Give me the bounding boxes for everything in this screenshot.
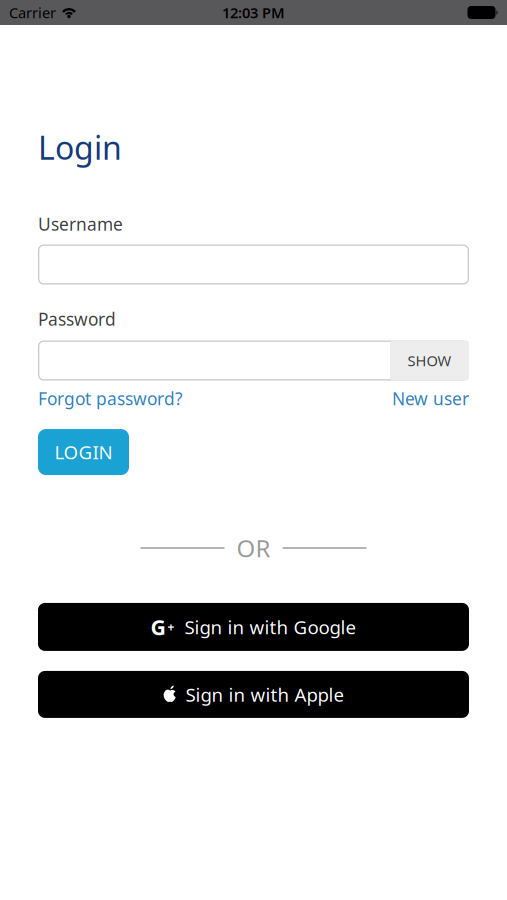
- button[interactable]: Password: [38, 340, 469, 380]
- button[interactable]: G: [38, 603, 469, 651]
- staticText: Sign in with Apple: [185, 682, 344, 707]
- staticText: G: [150, 613, 165, 641]
- button[interactable]: Forgot password?: [38, 387, 183, 410]
- button[interactable]: SHOW: [390, 340, 469, 380]
- staticText: +: [167, 619, 174, 635]
- staticText: Login: [38, 126, 122, 168]
- staticText: New user: [392, 387, 469, 410]
- staticText: Username: [38, 212, 123, 235]
- button[interactable]: New user: [392, 387, 469, 410]
- staticText: Password: [38, 307, 116, 330]
- staticText: Carrier: [9, 3, 56, 22]
- staticText: 12:03 PM: [222, 3, 285, 22]
- staticText: LOGIN: [54, 440, 112, 464]
- staticText: Sign in with Google: [184, 614, 356, 639]
- staticText: Forgot password?: [38, 387, 183, 410]
- staticText: OR: [236, 532, 270, 564]
- button[interactable]: Username: [38, 244, 469, 284]
- staticText: SHOW: [407, 351, 451, 370]
- button[interactable]: LOGIN: [38, 429, 129, 475]
- button[interactable]: Sign in with Apple: [38, 671, 469, 718]
